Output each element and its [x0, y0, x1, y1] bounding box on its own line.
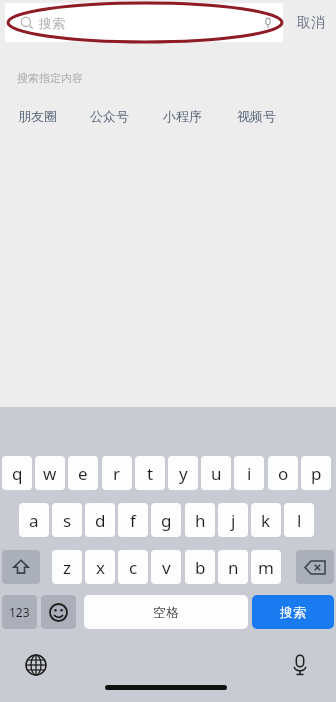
button[interactable]: u	[201, 456, 231, 490]
staticText: 朋友圈	[18, 108, 57, 124]
button[interactable]: Numbers	[2, 595, 37, 629]
staticText: 小程序	[163, 108, 202, 124]
button[interactable]: f	[118, 503, 148, 537]
button[interactable]: 搜索	[5, 3, 283, 42]
staticText: t	[147, 462, 154, 485]
button[interactable]: w	[35, 456, 65, 490]
staticText: u	[211, 462, 222, 485]
button[interactable]: p	[301, 456, 331, 490]
button[interactable]: q	[2, 456, 32, 490]
staticText: 搜索	[39, 15, 65, 31]
staticText: n	[228, 556, 239, 579]
staticText: 视频号	[237, 108, 276, 124]
button[interactable]: l	[284, 503, 314, 537]
staticText: e	[78, 462, 88, 485]
staticText: c	[129, 556, 138, 579]
staticText: b	[195, 556, 206, 579]
staticText: o	[278, 462, 289, 485]
button[interactable]: 搜索	[252, 595, 334, 629]
staticText: l	[297, 509, 302, 532]
button[interactable]: h	[185, 503, 215, 537]
button[interactable]: g	[151, 503, 181, 537]
staticText: a	[29, 509, 39, 532]
staticText: 公众号	[90, 108, 129, 124]
staticText: w	[43, 462, 57, 485]
button[interactable]: Backspace	[296, 550, 334, 584]
staticText: 空格	[153, 604, 179, 620]
button[interactable]: y	[168, 456, 198, 490]
button[interactable]: r	[102, 456, 132, 490]
button[interactable]: v	[151, 550, 181, 584]
button[interactable]: 视频号	[237, 106, 282, 126]
staticText: v	[162, 556, 171, 579]
staticText: 取消	[297, 14, 325, 32]
button[interactable]: d	[85, 503, 115, 537]
staticText: y	[179, 462, 188, 485]
staticText: 123	[9, 604, 30, 620]
button[interactable]: Shift	[2, 550, 40, 584]
staticText: s	[63, 509, 72, 532]
other: Voice search	[261, 16, 275, 30]
button[interactable]: 朋友圈	[18, 106, 63, 126]
staticText: 搜索指定内容	[17, 71, 83, 85]
button[interactable]: 小程序	[163, 106, 208, 126]
staticText: i	[247, 462, 252, 485]
staticText: q	[12, 462, 23, 485]
button[interactable]: m	[251, 550, 281, 584]
staticText: x	[96, 556, 105, 579]
button[interactable]: 取消	[288, 3, 334, 42]
button[interactable]: t	[135, 456, 165, 490]
staticText: f	[130, 509, 136, 532]
button[interactable]: n	[218, 550, 248, 584]
button[interactable]: j	[218, 503, 248, 537]
button[interactable]: a	[19, 503, 49, 537]
button[interactable]: o	[268, 456, 298, 490]
staticText: d	[95, 509, 106, 532]
button[interactable]: Emoji	[41, 595, 76, 629]
button[interactable]: 空格	[84, 595, 248, 629]
button[interactable]: 公众号	[90, 106, 135, 126]
staticText: m	[258, 556, 274, 579]
other: Shift	[13, 559, 29, 575]
button[interactable]: b	[185, 550, 215, 584]
button[interactable]: e	[68, 456, 98, 490]
button[interactable]: k	[251, 503, 281, 537]
button[interactable]: x	[85, 550, 115, 584]
button[interactable]: Change keyboard	[20, 649, 52, 681]
staticText: r	[113, 462, 121, 485]
button[interactable]: i	[234, 456, 264, 490]
staticText: k	[261, 509, 271, 532]
staticText: h	[195, 509, 206, 532]
button[interactable]: z	[52, 550, 82, 584]
staticText: p	[311, 462, 322, 485]
staticText: z	[63, 556, 71, 579]
staticText: g	[161, 509, 172, 532]
button[interactable]: Dictation	[284, 649, 316, 681]
button[interactable]: c	[118, 550, 148, 584]
staticText: j	[231, 509, 236, 532]
button[interactable]: s	[52, 503, 82, 537]
staticText: 搜索	[280, 604, 306, 620]
